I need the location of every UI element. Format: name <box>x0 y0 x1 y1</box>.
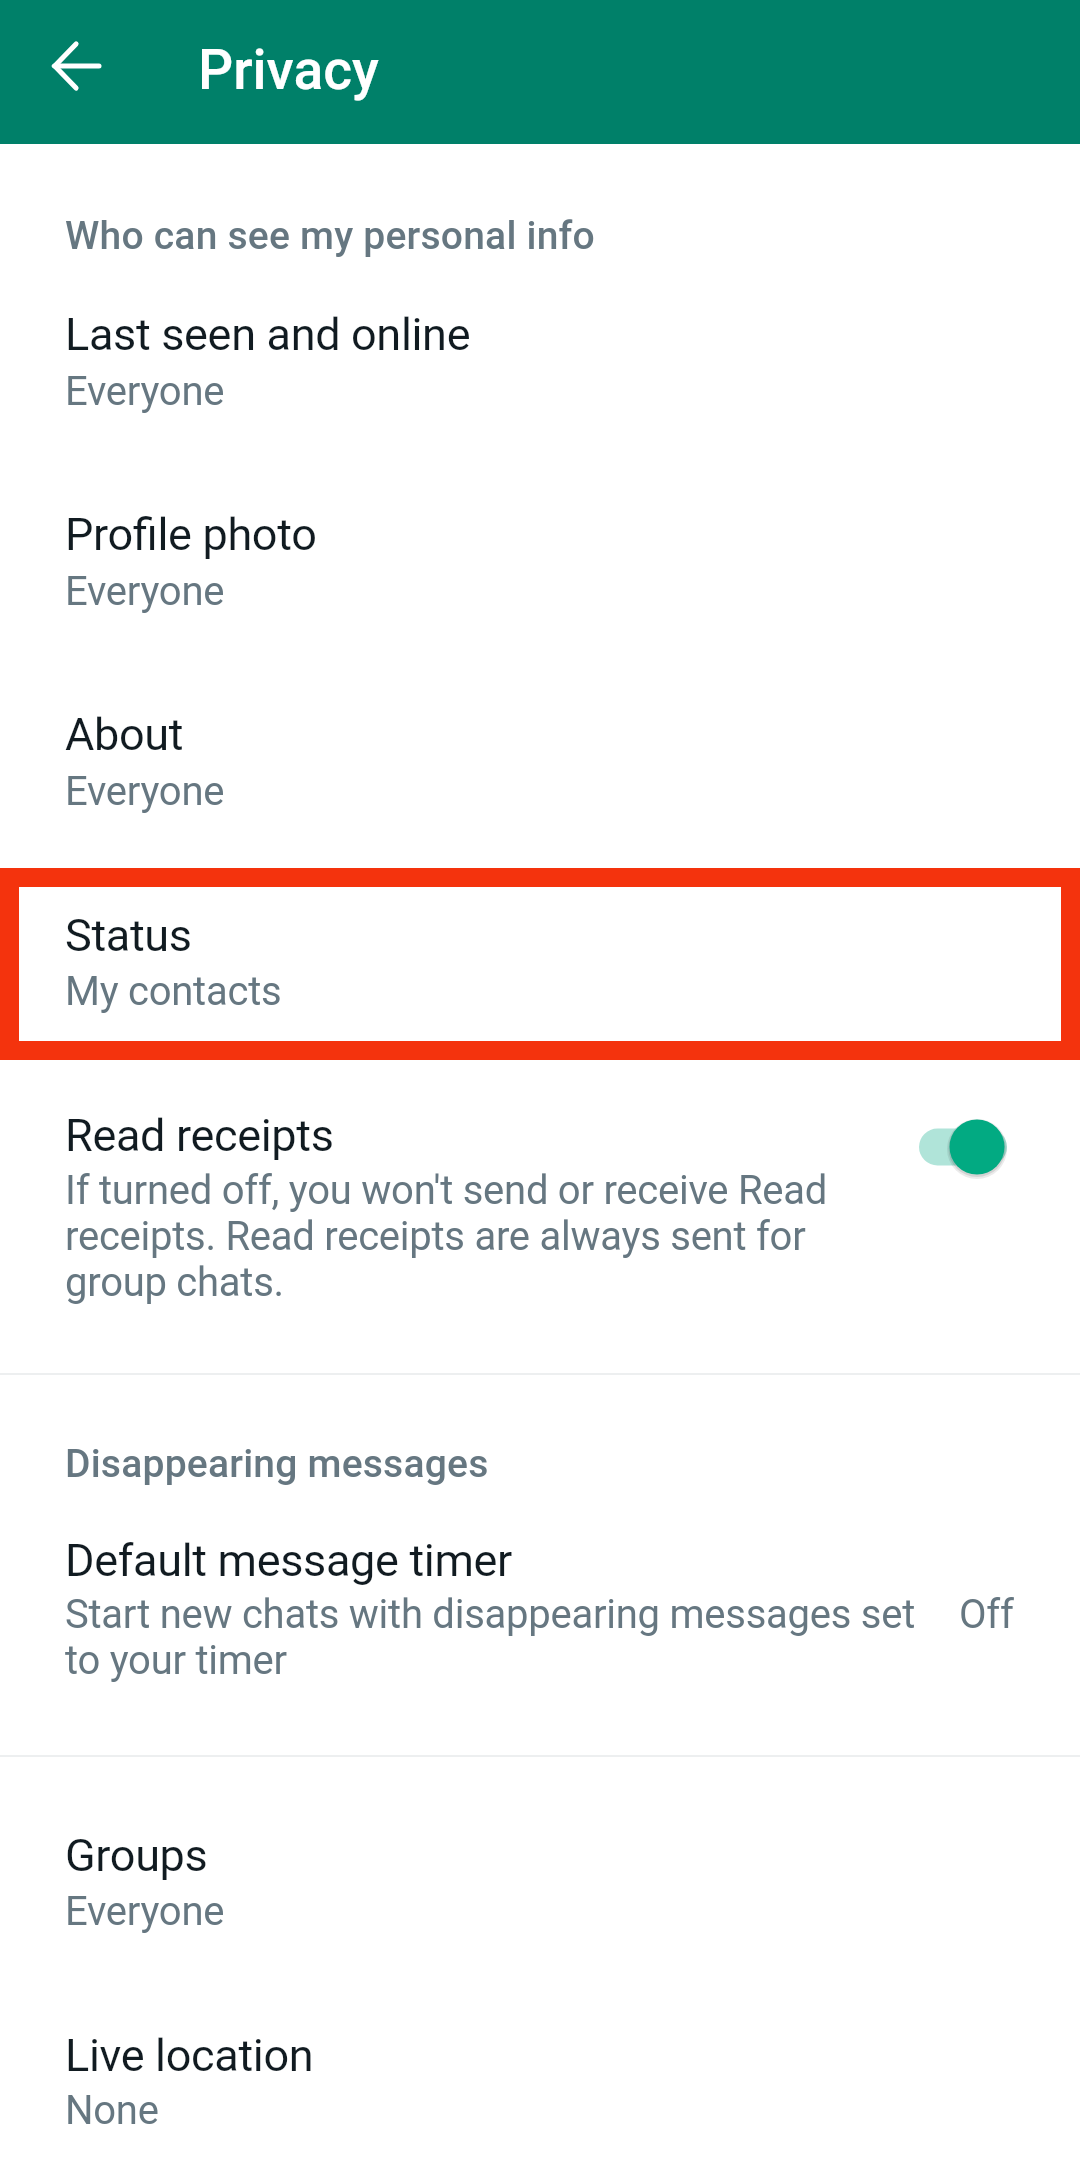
button[interactable]: Live location <box>0 1997 1080 2159</box>
staticText: Everyone <box>65 368 225 415</box>
staticText: Default message timer <box>65 1534 513 1587</box>
staticText: None <box>65 2087 159 2134</box>
button[interactable]: Default message timer <box>0 1500 1080 1755</box>
button[interactable]: Back <box>30 18 126 114</box>
button[interactable]: Last seen and online <box>0 276 1080 476</box>
staticText: Privacy <box>198 38 379 102</box>
staticText: Read receipts <box>65 1109 334 1162</box>
staticText: Off <box>959 1591 1014 1638</box>
staticText: Disappearing messages <box>65 1441 489 1487</box>
staticText: Live location <box>65 2029 314 2082</box>
button[interactable]: About <box>0 676 1080 868</box>
button[interactable]: Read receipts <box>0 1060 1080 1373</box>
staticText: My contacts <box>65 968 282 1015</box>
staticText: Everyone <box>65 1888 225 1935</box>
button[interactable]: Groups <box>0 1797 1080 1997</box>
staticText: Everyone <box>65 768 225 815</box>
staticText: Groups <box>65 1829 208 1882</box>
staticText: Status <box>65 909 192 962</box>
button[interactable]: Profile photo <box>0 476 1080 676</box>
staticText: Start new chats with disappearing messag… <box>65 1591 945 1684</box>
button[interactable]: Status <box>0 868 1080 1060</box>
staticText: Last seen and online <box>65 308 471 361</box>
staticText: Profile photo <box>65 508 317 561</box>
staticText: About <box>65 708 184 761</box>
staticText: If turned off, you won't send or receive… <box>65 1167 855 1306</box>
staticText: Who can see my personal info <box>65 213 595 259</box>
button[interactable]: Read receipts switch, on <box>900 1105 1030 1185</box>
staticText: Everyone <box>65 568 225 615</box>
